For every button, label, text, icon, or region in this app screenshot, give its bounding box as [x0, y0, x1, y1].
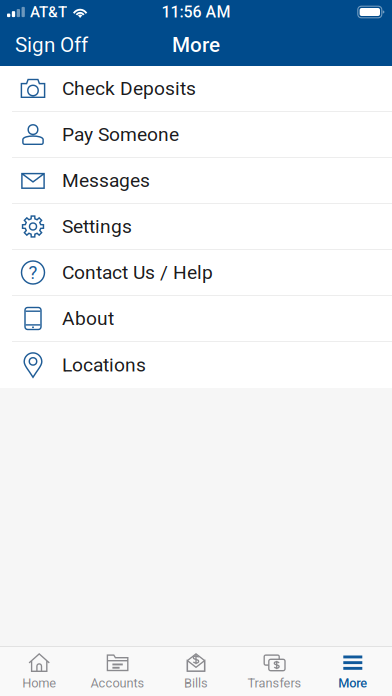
staticText: Locations	[62, 354, 146, 376]
button[interactable]: Locations	[0, 342, 392, 388]
button[interactable]: ?	[0, 250, 392, 296]
button[interactable]: More	[314, 647, 392, 696]
button[interactable]: Settings	[0, 204, 392, 250]
button[interactable]: Transfers	[235, 647, 314, 696]
button[interactable]: Pay Someone	[0, 112, 392, 158]
staticText: Sign Off	[15, 33, 88, 57]
button[interactable]: Accounts	[78, 647, 157, 696]
staticText: AT&T	[30, 3, 67, 21]
button[interactable]: Sign Off	[0, 24, 103, 66]
button[interactable]: Check Deposits	[0, 66, 392, 112]
staticText: Transfers	[247, 675, 301, 690]
staticText: Home	[22, 675, 56, 690]
staticText: Messages	[62, 169, 150, 192]
staticText: Accounts	[91, 675, 145, 690]
staticText: 11:56 AM	[161, 3, 230, 21]
button[interactable]: Messages	[0, 158, 392, 204]
button[interactable]: Home	[0, 647, 78, 696]
button[interactable]: About	[0, 296, 392, 342]
staticText: Bills	[184, 675, 208, 690]
staticText: About	[62, 307, 114, 330]
button[interactable]: Bills	[157, 647, 235, 696]
staticText: Contact Us / Help	[62, 261, 213, 284]
staticText: Check Deposits	[62, 77, 196, 100]
staticText: More	[338, 675, 367, 690]
staticText: More	[172, 33, 220, 57]
staticText: Pay Someone	[62, 123, 179, 146]
staticText: ?	[28, 262, 37, 283]
staticText: Settings	[62, 215, 132, 238]
